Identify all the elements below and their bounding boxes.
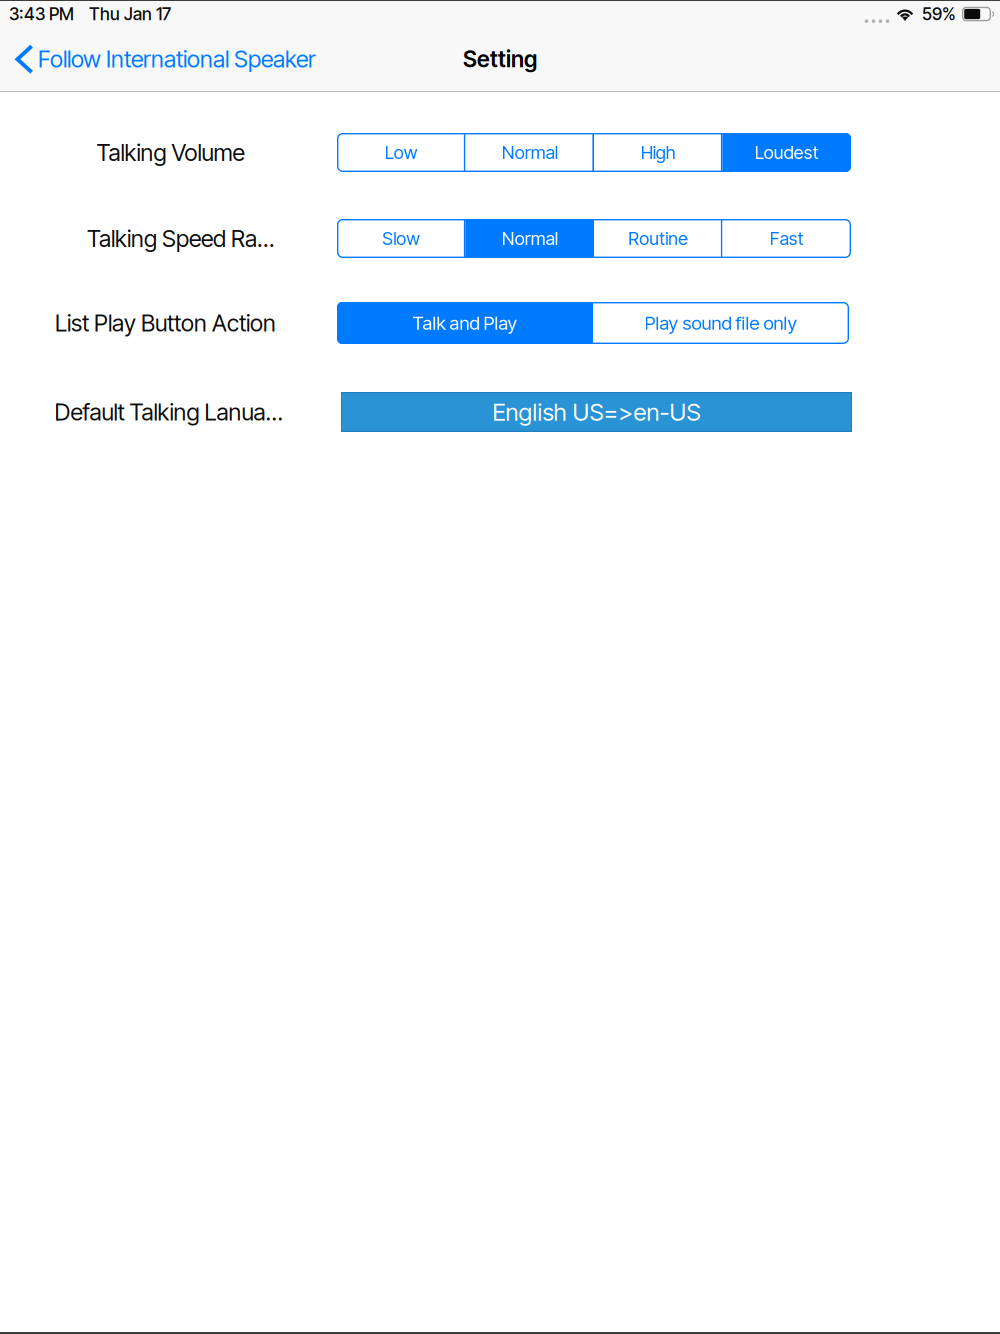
staticText: Low [385, 142, 418, 163]
button[interactable]: Slow [337, 219, 465, 258]
button[interactable]: Low [337, 133, 465, 172]
staticText: 59% [922, 3, 956, 24]
staticText: Default Talking Lanua... [54, 398, 283, 426]
staticText: Talk and Play [412, 312, 517, 334]
staticText: List Play Button Action [55, 309, 276, 337]
staticText: Normal [502, 228, 558, 249]
button[interactable]: Normal [465, 219, 594, 258]
staticText: Setting [463, 45, 537, 73]
button[interactable]: Play sound file only [593, 302, 849, 344]
staticText: Follow International Speaker [38, 45, 316, 73]
button[interactable]: High [594, 133, 722, 172]
staticText: High [641, 142, 676, 163]
button[interactable]: Follow International Speaker [0, 27, 326, 91]
staticText: Loudest [755, 142, 819, 163]
button[interactable]: Loudest [722, 133, 851, 172]
staticText: Normal [502, 142, 558, 163]
staticText: Slow [382, 228, 420, 249]
button[interactable]: Fast [722, 219, 851, 258]
button[interactable]: English US=>en-US [341, 392, 852, 432]
staticText: Play sound file only [644, 312, 797, 334]
button[interactable]: Normal [465, 133, 594, 172]
staticText: Routine [628, 228, 688, 249]
button[interactable]: Talk and Play [337, 302, 593, 344]
staticText: Talking Volume [96, 138, 244, 167]
staticText: English US=>en-US [492, 397, 700, 426]
staticText: Talking Speed Ra... [87, 224, 275, 253]
staticText: Fast [770, 228, 804, 249]
staticText: Thu Jan 17 [89, 3, 171, 24]
staticText: 3:43 PM [9, 3, 74, 24]
button[interactable]: Routine [594, 219, 722, 258]
